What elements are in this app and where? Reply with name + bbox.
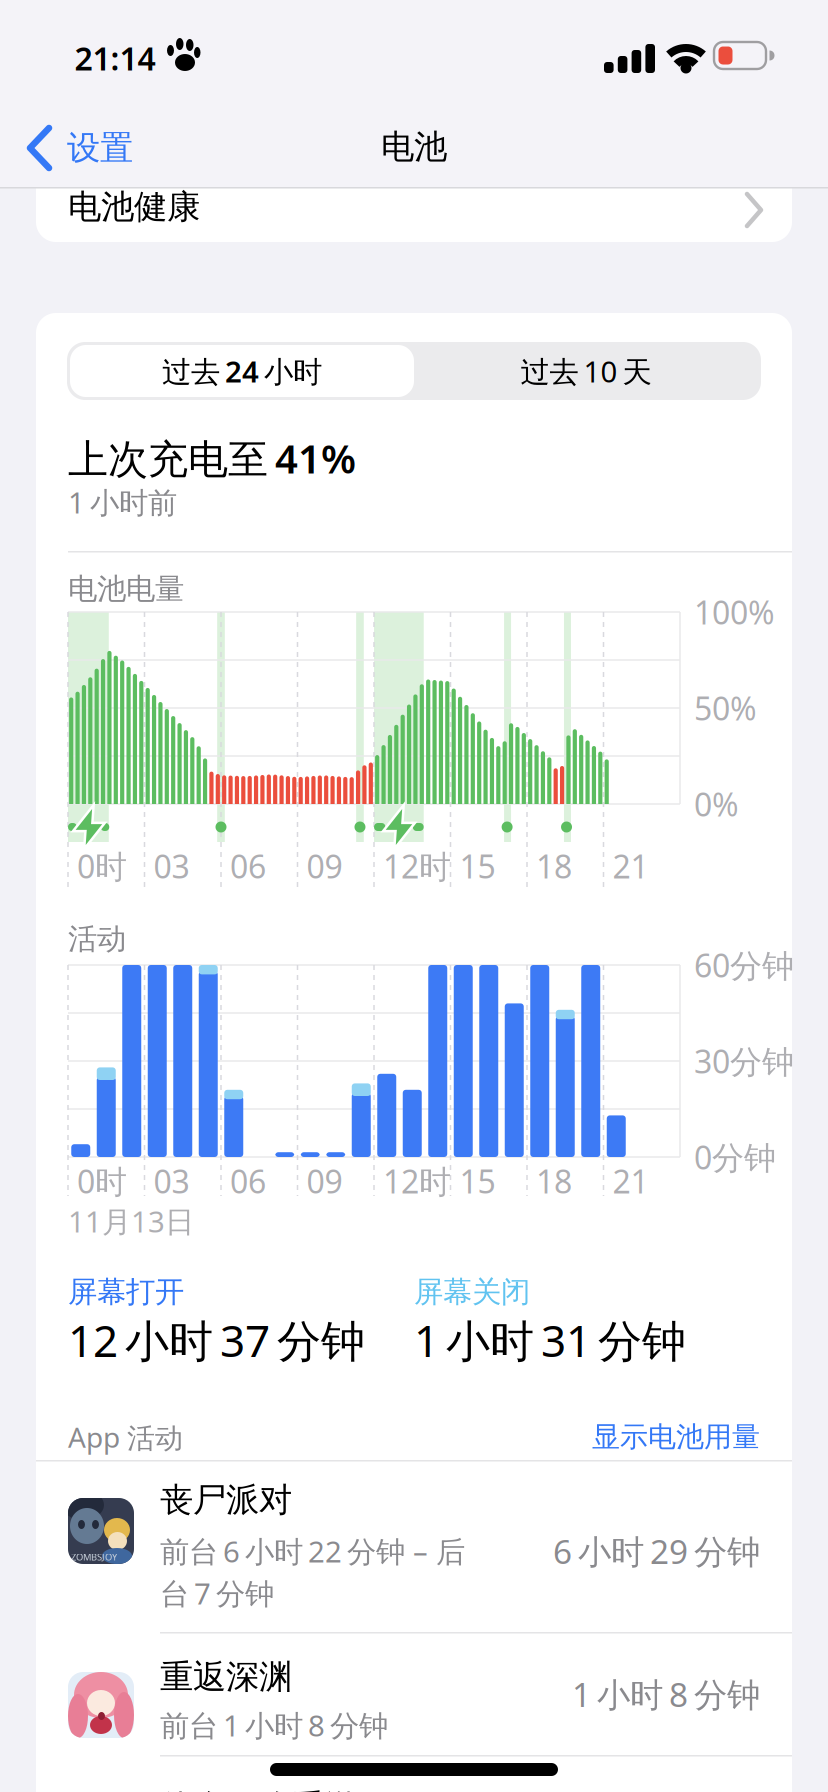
staticText: 0% <box>694 783 739 825</box>
staticText: 21 <box>612 845 648 887</box>
staticText: 1 小时前 <box>68 482 177 521</box>
staticText: ZOMBSJOY <box>71 1551 117 1563</box>
staticText: 屏幕关闭 <box>414 1274 530 1310</box>
staticText: 15 <box>459 845 495 887</box>
button[interactable]: 过去 10 天 <box>414 345 758 397</box>
staticText: App 活动 <box>68 1418 183 1456</box>
staticText: 重返深渊 <box>160 1656 292 1697</box>
button[interactable]: 重返深渊 <box>36 1633 792 1756</box>
staticText: 03 <box>153 1160 189 1202</box>
staticText: 屏幕打开 <box>68 1274 184 1310</box>
staticText: 上次充电至 41% <box>68 431 356 484</box>
staticText: 前台 6 小时 22 分钟 – 后 <box>160 1531 465 1570</box>
staticText: 18 <box>536 845 572 887</box>
button[interactable]: 显示电池用量 <box>592 1420 760 1454</box>
staticText: 15 <box>459 1160 495 1202</box>
staticText: 09 <box>306 1160 342 1202</box>
button[interactable]: 返回设置 <box>27 125 133 171</box>
staticText: 12时 <box>383 1160 451 1202</box>
staticText: 1 小时 31 分钟 <box>414 1311 686 1369</box>
staticText: 12时 <box>383 845 451 887</box>
button[interactable]: 过去 24 小时 <box>70 345 414 397</box>
staticText: 09 <box>306 845 342 887</box>
staticText: 丧尸派对 <box>160 1479 292 1520</box>
staticText: 使命召唤手游 <box>160 1786 358 1792</box>
staticText: 21 <box>612 1160 648 1202</box>
staticText: 06 <box>230 1160 266 1202</box>
staticText: 100% <box>694 591 775 633</box>
staticText: 06 <box>230 845 266 887</box>
staticText: 21:14 <box>74 37 155 79</box>
staticText: 30分钟 <box>694 1040 794 1082</box>
staticText: 18 <box>536 1160 572 1202</box>
staticText: 电池 <box>381 126 447 167</box>
staticText: 电池健康 <box>68 186 200 227</box>
staticText: 0时 <box>77 1160 127 1202</box>
staticText: 6 小时 29 分钟 <box>553 1529 760 1573</box>
staticText: 0分钟 <box>694 1136 776 1178</box>
staticText: 60分钟 <box>694 944 794 986</box>
staticText: 过去 24 小时 <box>162 351 322 390</box>
button[interactable]: ZOMBSJOY <box>36 1460 792 1632</box>
staticText: 电池电量 <box>68 571 184 607</box>
staticText: 50% <box>694 687 757 729</box>
staticText: 0时 <box>77 845 127 887</box>
staticText: 11月13日 <box>68 1201 194 1240</box>
staticText: 1 小时 8 分钟 <box>572 1672 760 1716</box>
staticText: 过去 10 天 <box>520 351 651 390</box>
staticText: 前台 1 小时 8 分钟 <box>160 1705 388 1744</box>
staticText: 03 <box>153 845 189 887</box>
staticText: 台 7 分钟 <box>160 1573 274 1612</box>
staticText: 显示电池用量 <box>592 1420 760 1454</box>
staticText: 12 小时 37 分钟 <box>68 1311 365 1369</box>
staticText: 活动 <box>68 921 126 957</box>
button[interactable]: 电池健康 <box>36 150 792 242</box>
staticText: 设置 <box>67 127 133 168</box>
